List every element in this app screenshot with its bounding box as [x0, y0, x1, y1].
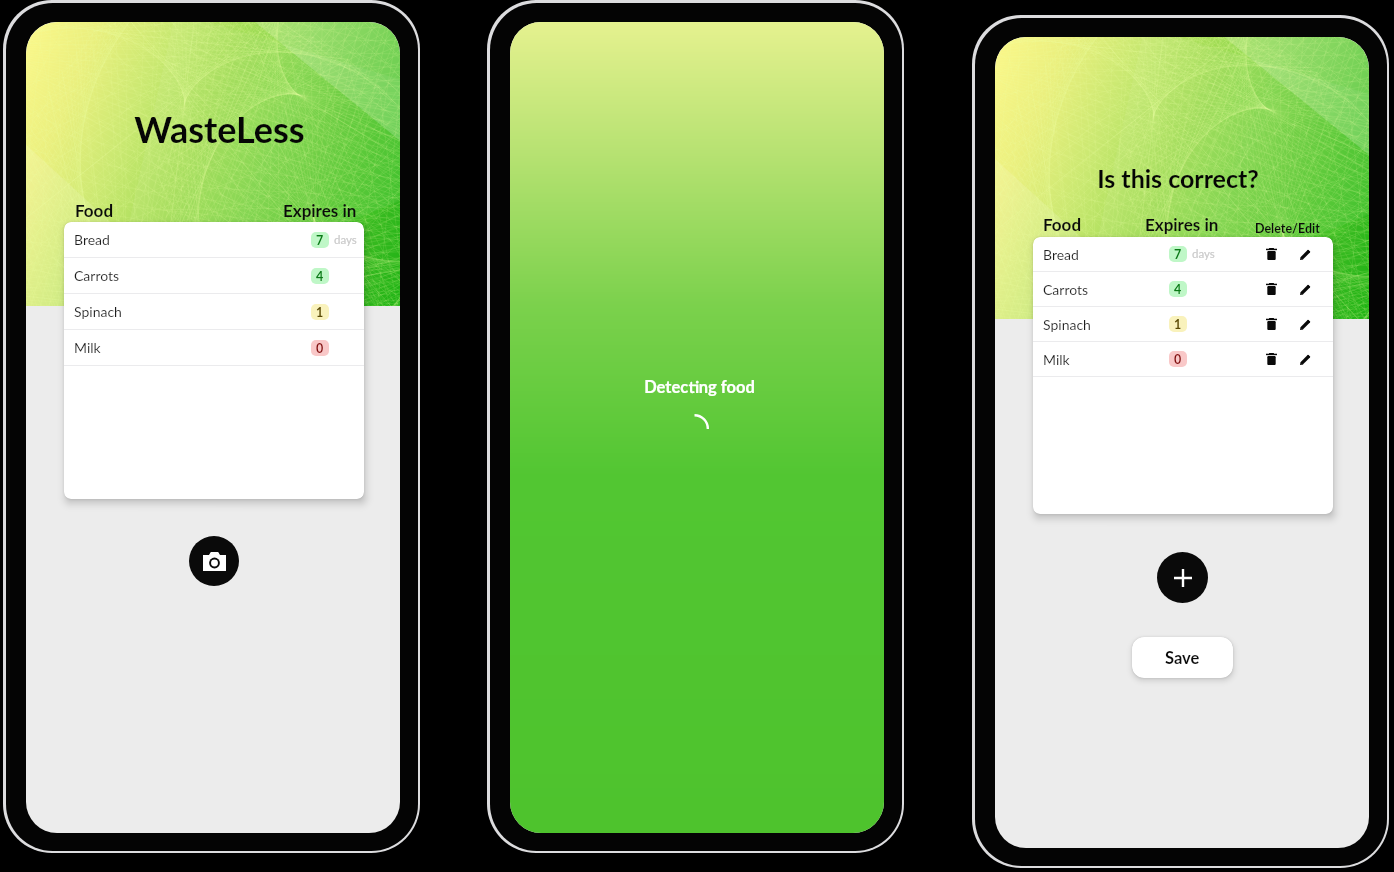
staticText: 7	[316, 233, 324, 248]
staticText: Milk	[1043, 351, 1070, 368]
button[interactable]: Delete	[1259, 347, 1283, 371]
button[interactable]: Carrots	[1033, 272, 1333, 306]
staticText: Expires in	[283, 200, 357, 220]
staticText: 1	[316, 305, 324, 320]
staticText: Spinach	[74, 303, 122, 320]
button[interactable]: Delete	[1259, 277, 1283, 301]
staticText: 4	[316, 269, 324, 284]
staticText: Milk	[74, 339, 101, 356]
button[interactable]: Edit	[1293, 347, 1317, 371]
staticText: Carrots	[74, 267, 120, 284]
staticText: WasteLess	[134, 107, 305, 150]
button[interactable]: Milk	[1033, 342, 1333, 376]
staticText: Spinach	[1043, 316, 1091, 333]
staticText: 7	[1174, 247, 1182, 262]
button[interactable]: Edit	[1293, 242, 1317, 266]
staticText: Food	[1043, 214, 1082, 234]
button[interactable]: Take photo	[189, 536, 239, 586]
button[interactable]: Delete	[1259, 242, 1283, 266]
staticText: Carrots	[1043, 281, 1089, 298]
button[interactable]: Delete	[1259, 312, 1283, 336]
staticText: 0	[316, 341, 324, 356]
staticText: 0	[1174, 352, 1182, 367]
button[interactable]: Bread	[64, 222, 364, 257]
staticText: 4	[1174, 282, 1182, 297]
button[interactable]: Edit	[1293, 312, 1317, 336]
staticText: Food	[75, 200, 114, 220]
button[interactable]: Edit	[1293, 277, 1317, 301]
button[interactable]: Add item	[1157, 552, 1208, 603]
button[interactable]: Spinach	[1033, 307, 1333, 341]
staticText: Delete/Edit	[1255, 221, 1320, 236]
button[interactable]: Spinach	[64, 294, 364, 329]
staticText: days	[334, 233, 357, 247]
button[interactable]: Bread	[1033, 237, 1333, 271]
staticText: Bread	[74, 231, 110, 248]
staticText: 1	[1174, 317, 1182, 332]
button[interactable]: Milk	[64, 330, 364, 365]
button[interactable]: Carrots	[64, 258, 364, 293]
staticText: Detecting food	[644, 377, 755, 397]
staticText: Is this correct?	[1097, 163, 1259, 193]
staticText: Save	[1165, 648, 1200, 668]
button[interactable]: Save	[1132, 637, 1233, 678]
staticText: Expires in	[1145, 214, 1219, 234]
staticText: Bread	[1043, 246, 1079, 263]
staticText: days	[1192, 247, 1215, 261]
